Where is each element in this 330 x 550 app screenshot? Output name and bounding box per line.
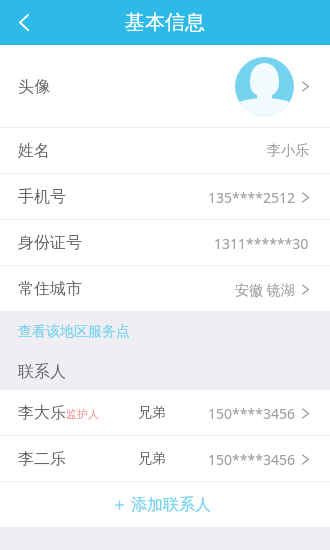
staticText: 身份证号 xyxy=(18,233,82,253)
staticText: 姓名 xyxy=(18,141,50,161)
button[interactable]: 李二乐 xyxy=(0,436,330,482)
staticText: 李二乐 xyxy=(18,449,66,469)
staticText: 头像 xyxy=(18,77,50,97)
staticText: 150****3456 xyxy=(208,450,295,469)
button[interactable]: 手机号 xyxy=(0,174,330,220)
staticText: 基本信息 xyxy=(125,10,205,35)
staticText: 手机号 xyxy=(18,187,66,207)
button[interactable]: 常住城市 xyxy=(0,266,330,312)
button[interactable]: 身份证号 xyxy=(0,220,330,266)
staticText: 135****2512 xyxy=(208,188,295,207)
button[interactable]: 头像 xyxy=(0,45,330,128)
button[interactable]: 添加联系人 xyxy=(0,482,330,528)
button[interactable]: 李大乐监护人 xyxy=(0,390,330,436)
button[interactable]: 查看该地区服务点 xyxy=(18,323,130,341)
staticText: 添加联系人 xyxy=(131,495,211,515)
staticText: 兄弟 xyxy=(138,404,166,422)
staticText: 联系人 xyxy=(18,362,66,382)
staticText: 兄弟 xyxy=(138,450,166,468)
staticText: 常住城市 xyxy=(18,279,82,299)
button[interactable]: 姓名 xyxy=(0,128,330,174)
staticText: 李小乐 xyxy=(267,142,309,160)
staticText: 150****3456 xyxy=(208,404,295,423)
button[interactable]: Back xyxy=(0,0,48,45)
staticText: 1311******30 xyxy=(214,234,309,253)
staticText: 安徽 镜湖 xyxy=(235,280,295,299)
staticText: 李大乐监护人 xyxy=(18,403,99,423)
